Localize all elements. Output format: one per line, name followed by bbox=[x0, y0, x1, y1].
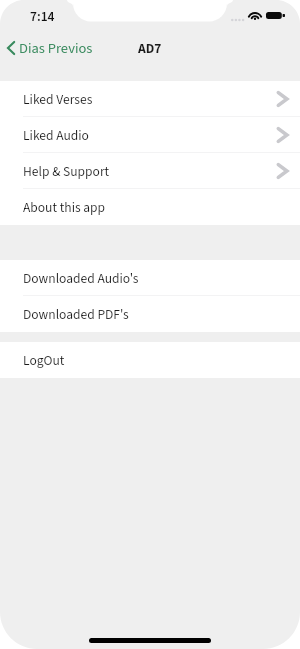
button[interactable]: LogOut bbox=[0, 342, 300, 378]
staticText: Dias Previos bbox=[19, 38, 93, 58]
button[interactable]: Downloaded PDF's bbox=[0, 296, 300, 332]
staticText: Liked Audio bbox=[23, 126, 89, 145]
button[interactable]: Downloaded Audio's bbox=[0, 260, 300, 296]
staticText: AD7 bbox=[138, 39, 162, 58]
staticText: About this app bbox=[23, 198, 106, 217]
staticText: Help & Support bbox=[23, 162, 110, 181]
staticText: Liked Verses bbox=[23, 90, 93, 109]
button[interactable]: About this app bbox=[0, 189, 300, 225]
staticText: Downloaded PDF's bbox=[23, 305, 129, 324]
button[interactable]: Back bbox=[0, 33, 101, 63]
button[interactable]: Liked Verses bbox=[0, 81, 300, 117]
staticText: LogOut bbox=[23, 351, 65, 370]
other: Back bbox=[7, 41, 15, 55]
button[interactable]: Help & Support bbox=[0, 153, 300, 189]
staticText: 7:14 bbox=[30, 7, 55, 26]
staticText: Downloaded Audio's bbox=[23, 269, 139, 288]
button[interactable]: Liked Audio bbox=[0, 117, 300, 153]
